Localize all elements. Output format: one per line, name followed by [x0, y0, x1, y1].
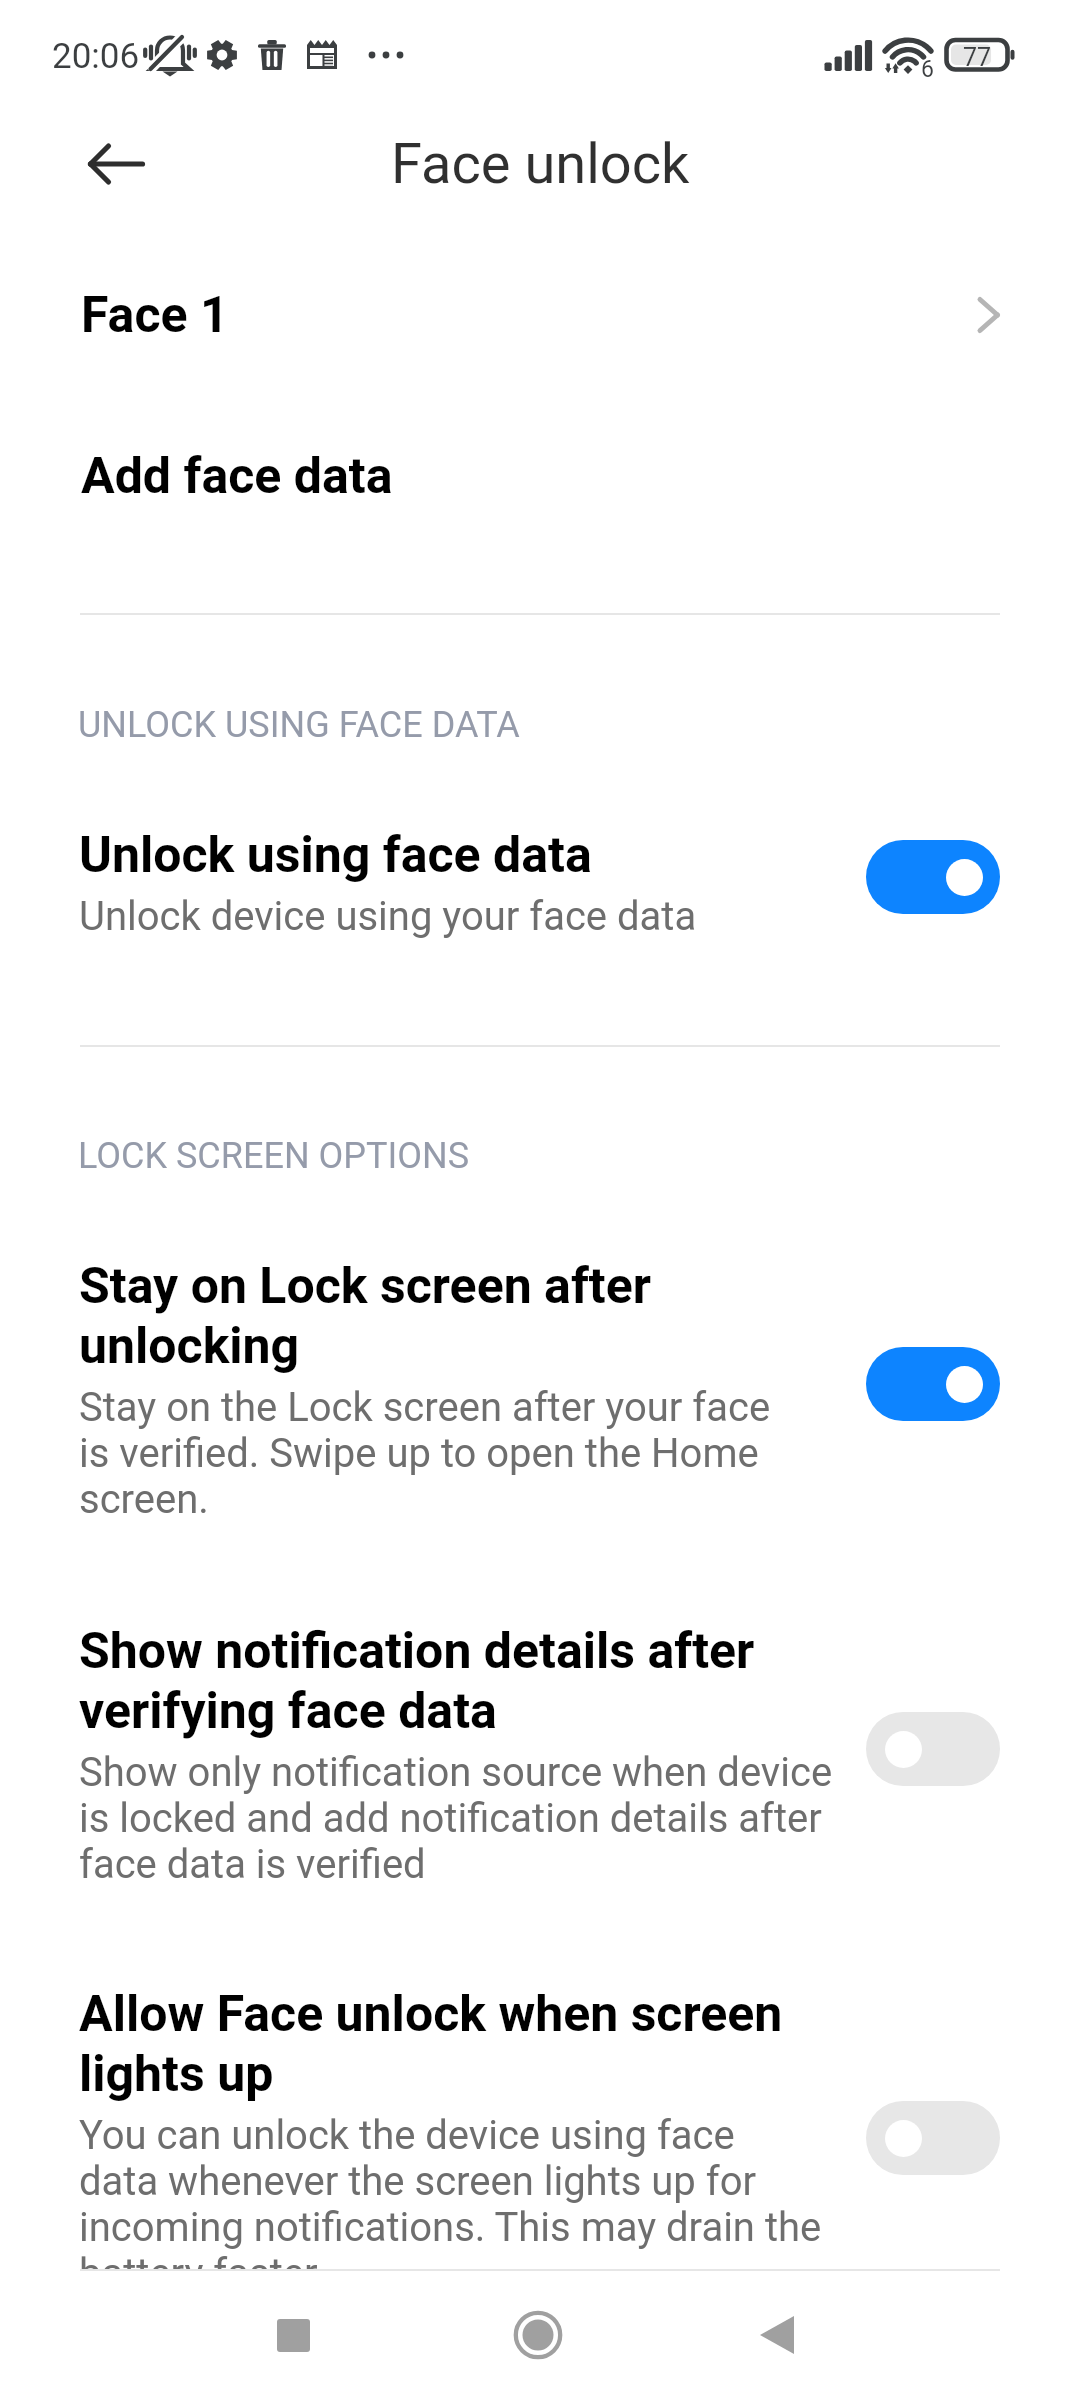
- button[interactable]: Switch off: [866, 2101, 1000, 2175]
- staticText: You can unlock the device using face dat…: [79, 2113, 822, 2297]
- staticText: Show only notification source when devic…: [79, 1750, 833, 1888]
- button[interactable]: Home: [488, 2285, 588, 2385]
- staticText: Show notification details after verifyin…: [79, 1620, 755, 1740]
- button[interactable]: Back: [79, 136, 161, 192]
- staticText: UNLOCK USING FACE DATA: [78, 704, 520, 746]
- staticText: Face unlock: [391, 131, 690, 197]
- button[interactable]: Face 1: [0, 257, 1080, 373]
- button[interactable]: Back: [727, 2285, 827, 2385]
- button[interactable]: [0, 1200, 1080, 1565]
- staticText: LOCK SCREEN OPTIONS: [78, 1135, 470, 1177]
- button[interactable]: Switch on: [866, 1347, 1000, 1421]
- staticText: 20:06: [52, 36, 140, 77]
- button[interactable]: Switch on: [866, 840, 1000, 914]
- button[interactable]: Add face data: [0, 418, 1080, 534]
- staticText: Unlock using face data: [79, 824, 592, 884]
- button[interactable]: [0, 1930, 1080, 2270]
- staticText: Unlock device using your face data: [79, 894, 697, 940]
- staticText: Add face data: [81, 447, 393, 506]
- staticText: Stay on Lock screen after unlocking: [79, 1255, 652, 1375]
- button[interactable]: [0, 1565, 1080, 1930]
- staticText: Allow Face unlock when screen lights up: [79, 1983, 783, 2103]
- button[interactable]: Recents: [243, 2285, 343, 2385]
- staticText: Stay on the Lock screen after your face …: [79, 1385, 771, 1523]
- button[interactable]: Switch off: [866, 1712, 1000, 1786]
- button[interactable]: [0, 760, 1080, 1000]
- staticText: Face 1: [81, 286, 229, 345]
- staticText: 77: [963, 43, 992, 72]
- staticText: 6: [921, 56, 934, 83]
